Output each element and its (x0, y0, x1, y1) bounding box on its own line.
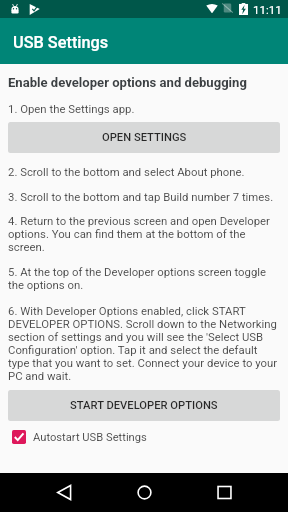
button[interactable]: OPEN SETTINGS (8, 122, 280, 153)
button[interactable]: Back (40, 473, 88, 512)
button[interactable]: Recent apps (200, 473, 248, 512)
staticText: OPEN SETTINGS (102, 131, 187, 144)
staticText: 5. At the top of the Developer options s… (8, 265, 280, 291)
staticText: 6. With Developer Options enabled, click… (8, 304, 280, 382)
staticText: 4. Return to the previous screen and ope… (8, 214, 280, 253)
staticText: 3. Scroll to the bottom and tap Build nu… (8, 190, 280, 203)
button[interactable]: Autostart USB Settings (12, 430, 212, 444)
staticText: USB Settings (13, 33, 109, 52)
staticText: Enable developer options and debugging (8, 75, 247, 90)
staticText: 2. Scroll to the bottom and select About… (8, 165, 280, 178)
button[interactable]: START DEVELOPER OPTIONS (8, 390, 280, 421)
staticText: Autostart USB Settings (33, 431, 147, 444)
staticText: START DEVELOPER OPTIONS (70, 399, 218, 412)
staticText: 11:11 (253, 3, 282, 16)
button[interactable]: Home (120, 473, 168, 512)
staticText: 1. Open the Settings app. (8, 102, 280, 115)
